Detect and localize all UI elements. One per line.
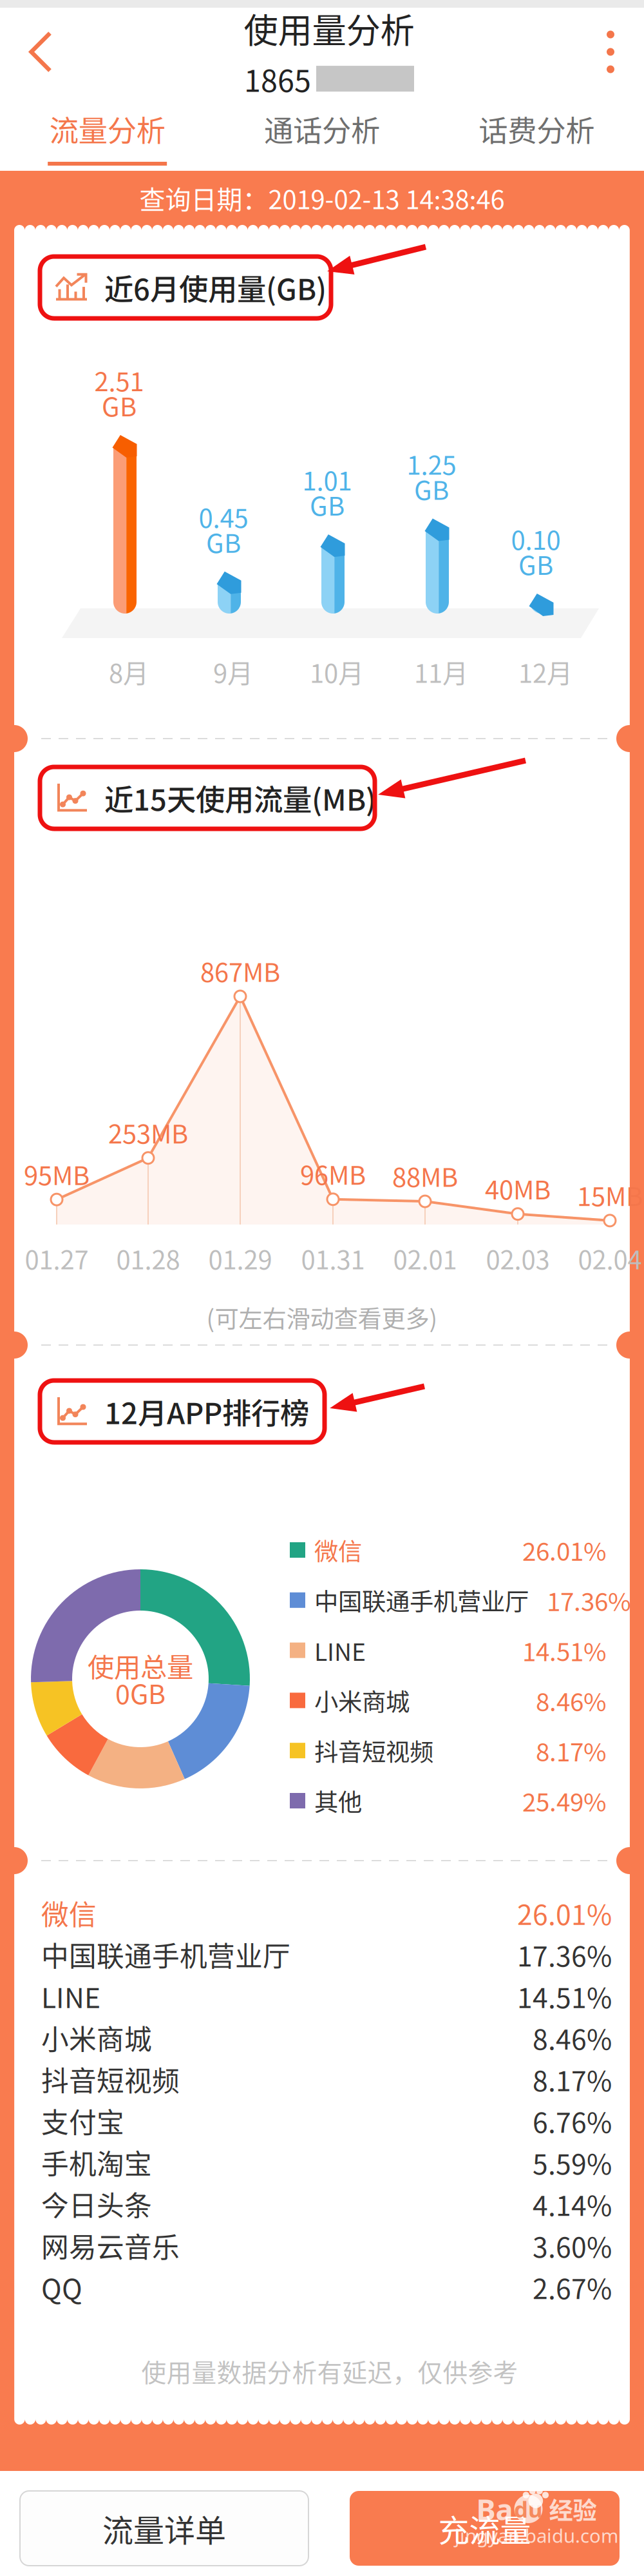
staticText: 02.03 [486,1239,550,1277]
staticText: 微信 [41,1893,97,1933]
staticText: 17.36% [547,1582,631,1618]
staticText: 8.46% [536,1682,607,1718]
staticText: 1.01 [302,461,352,498]
staticText: 中国联通手机营业厅 [314,1583,529,1618]
staticText: 01.29 [208,1239,272,1277]
staticText: 4.14% [533,2184,612,2224]
staticText: 95MB [24,1155,90,1192]
staticText: 0.45 [199,498,248,535]
staticText: 2.51 [94,361,144,399]
staticText: 今日头条 [41,2184,152,2224]
staticText: 02.04 [578,1239,642,1277]
staticText: 26.01% [517,1893,612,1933]
staticText: GB [414,470,449,507]
staticText: 17.36% [517,1935,612,1975]
staticText: 0GB [115,1673,166,1712]
staticText: 5.59% [533,2143,612,2182]
staticText: 01.31 [301,1239,365,1277]
staticText: 9月 [213,653,253,690]
staticText: 支付宝 [41,2101,124,2141]
staticText: 微信 [314,1533,362,1567]
button[interactable]: 流量分析 [0,96,215,171]
staticText: GB [518,545,553,582]
staticText: 12月APP排行榜 [104,1390,309,1433]
staticText: 抖音短视频 [41,2059,180,2099]
staticText: 40MB [485,1170,551,1207]
staticText: du [514,2494,543,2524]
button[interactable]: 话费分析 [429,96,644,171]
staticText: 8.17% [536,1733,607,1769]
staticText: 26.01% [522,1532,607,1568]
staticText: 12月 [518,653,573,690]
staticText: 使用量分析 [244,3,414,53]
staticText: 02.01 [393,1239,457,1277]
staticText: LINE [314,1633,366,1668]
staticText: 话费分析 [479,108,595,150]
button[interactable]: 流量详单 [20,2491,308,2566]
staticText: 867MB [200,952,280,989]
staticText: 8月 [109,653,149,690]
staticText: QQ [41,2267,82,2307]
staticText: 8.46% [533,2018,612,2058]
staticText: 使用量数据分析有延迟，仅供参考 [141,2353,518,2389]
staticText: (可左右滑动查看更多) [206,1300,438,1335]
staticText: 14.51% [517,1976,612,2016]
staticText: 01.28 [116,1239,180,1277]
staticText: 流量分析 [49,108,165,150]
button[interactable]: Back [0,8,81,96]
staticText: 使用总量 [88,1646,193,1685]
staticText: 25.49% [522,1783,607,1819]
staticText: 6.76% [533,2101,612,2141]
staticText: 流量详单 [102,2506,226,2551]
staticText: 其他 [314,1783,362,1818]
button[interactable]: 充流量 [350,2491,620,2566]
staticText: 中国联通手机营业厅 [41,1935,290,1975]
staticText: 充流量 [438,2506,531,2551]
staticText: jingyan.baidu.com [455,2523,618,2548]
staticText: Ba [476,2489,513,2529]
staticText: LINE [41,1976,100,2016]
button[interactable]: More options [577,8,644,96]
staticText: 15MB [577,1176,643,1213]
staticText: GB [102,386,137,424]
staticText: 0.10 [511,520,561,557]
staticText: 经验 [544,2492,597,2526]
staticText: 96MB [300,1155,366,1192]
staticText: 01.27 [25,1239,89,1277]
staticText: 10月 [310,653,364,690]
staticText: 抖音短视频 [314,1733,433,1768]
staticText: 小米商城 [41,2018,152,2058]
staticText: 8.17% [533,2059,612,2099]
staticText: 14.51% [522,1632,607,1668]
staticText: 2.67% [533,2267,612,2307]
staticText: 1.25 [407,445,456,482]
staticText: 1865 [244,57,311,100]
staticText: 88MB [392,1157,458,1194]
staticText: 查询日期：2019-02-13 14:38:46 [139,179,505,216]
staticText: 手机淘宝 [41,2143,152,2182]
staticText: 通话分析 [264,108,380,150]
button[interactable]: 通话分析 [215,96,429,171]
staticText: 近15天使用流量(MB) [104,777,376,819]
staticText: 近6月使用量(GB) [104,266,327,309]
staticText: 小米商城 [314,1683,410,1718]
staticText: 网易云音乐 [41,2226,180,2265]
staticText: 3.60% [533,2226,612,2265]
staticText: 11月 [414,653,468,690]
staticText: GB [206,523,241,560]
staticText: 253MB [108,1113,188,1151]
staticText: GB [310,486,345,523]
